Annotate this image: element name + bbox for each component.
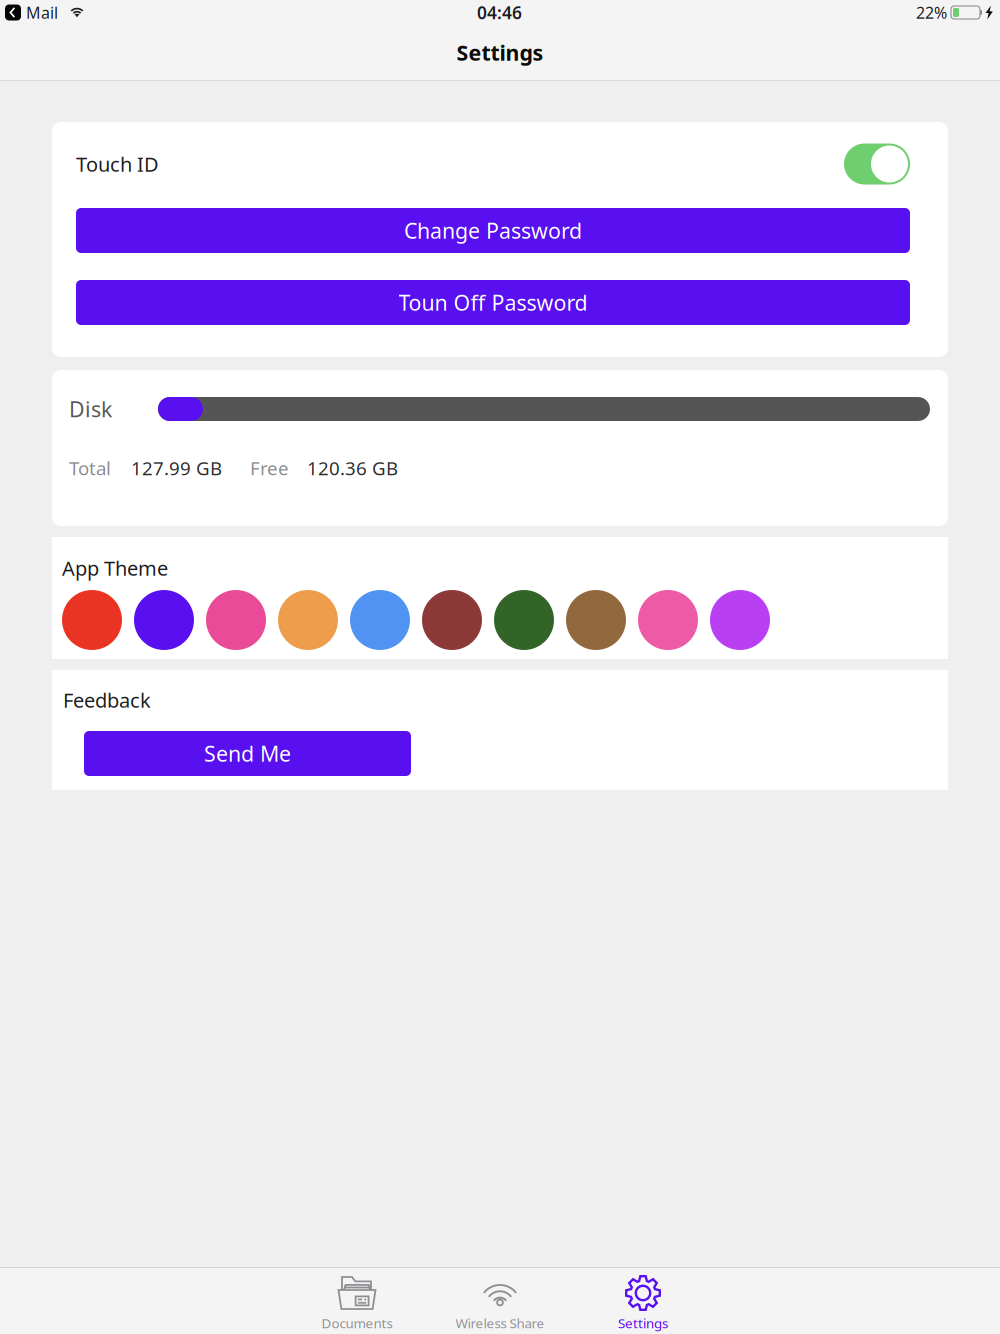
button[interactable]: Theme colour 2 xyxy=(134,590,194,650)
staticText: Disk xyxy=(69,395,112,423)
staticText: Wireless Share xyxy=(455,1314,544,1332)
staticText: 127.99 GB xyxy=(131,456,222,480)
staticText: Settings xyxy=(618,1314,668,1332)
button[interactable]: Theme colour 10 xyxy=(710,590,770,650)
button[interactable]: Change Password xyxy=(76,208,910,253)
button[interactable]: Send Me xyxy=(84,731,411,776)
button[interactable]: Theme colour 1 xyxy=(62,590,122,650)
button[interactable]: Theme colour 9 xyxy=(638,590,698,650)
button[interactable]: Theme colour 6 xyxy=(422,590,482,650)
button[interactable]: Back to Mail xyxy=(5,4,21,20)
staticText: Settings xyxy=(456,38,543,67)
staticText: Feedback xyxy=(63,687,151,713)
button[interactable]: Wireless Share xyxy=(428,1268,571,1334)
button[interactable]: Toun Off Password xyxy=(76,280,910,325)
staticText: Send Me xyxy=(204,739,291,768)
staticText: Documents xyxy=(321,1314,392,1332)
staticText: Mail xyxy=(26,2,58,23)
staticText: Total xyxy=(69,456,111,480)
staticText: Toun Off Password xyxy=(398,288,587,317)
button[interactable]: Touch ID xyxy=(844,143,910,184)
button[interactable]: Theme colour 3 xyxy=(206,590,266,650)
button[interactable]: Theme colour 7 xyxy=(494,590,554,650)
staticText: Free xyxy=(250,456,289,480)
button[interactable]: Documents xyxy=(285,1268,428,1334)
button[interactable]: Theme colour 4 xyxy=(278,590,338,650)
button[interactable]: Theme colour 5 xyxy=(350,590,410,650)
staticText: App Theme xyxy=(62,555,168,581)
staticText: 120.36 GB xyxy=(307,456,398,480)
staticText: Change Password xyxy=(404,216,582,245)
staticText: 22% xyxy=(916,2,947,23)
staticText: 04:46 xyxy=(477,1,522,24)
button[interactable]: Settings xyxy=(571,1268,714,1334)
button[interactable]: Theme colour 8 xyxy=(566,590,626,650)
staticText: Touch ID xyxy=(76,151,159,177)
